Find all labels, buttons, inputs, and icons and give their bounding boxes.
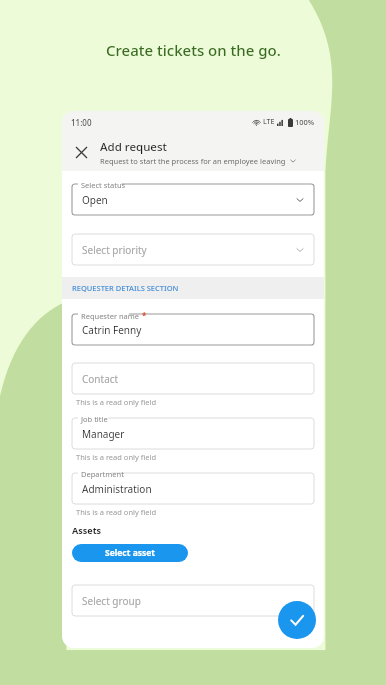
button[interactable]: Select asset (72, 544, 188, 562)
staticText: REQUESTER DETAILS SECTION (72, 283, 179, 293)
staticText: This is a read only field (76, 507, 157, 517)
staticText: Request to start the process for an empl… (100, 156, 286, 166)
staticText: This is a read only field (76, 397, 157, 407)
staticText: 100% (295, 117, 315, 127)
staticText: Catrin Fenny (82, 323, 142, 337)
staticText: LTE (263, 117, 275, 127)
button[interactable]: Submit request (278, 601, 316, 639)
staticText: Select asset (105, 547, 156, 559)
staticText: Open (82, 193, 108, 207)
staticText: Select priority (82, 243, 147, 257)
button[interactable]: Catrin Fenny (72, 314, 314, 345)
staticText: Select group (82, 594, 141, 608)
staticText: Job title (81, 414, 108, 424)
staticText: Create tickets on the go. (106, 40, 281, 60)
staticText: 11:00 (71, 117, 92, 128)
staticText: Department (81, 469, 124, 479)
button[interactable]: Administration (72, 473, 314, 504)
staticText: Administration (82, 482, 152, 496)
staticText: Manager (82, 427, 125, 441)
button[interactable]: Manager (72, 418, 314, 449)
staticText: * (142, 310, 147, 321)
staticText: Requester name (81, 311, 140, 321)
staticText: Contact (82, 372, 119, 386)
button[interactable]: Open (72, 184, 314, 215)
button[interactable]: Select priority (72, 234, 314, 265)
button[interactable]: Contact (72, 363, 314, 394)
staticText: Add request (100, 139, 167, 155)
button[interactable]: Close (62, 133, 100, 171)
staticText: Assets (72, 524, 102, 536)
staticText: Select status (81, 180, 126, 190)
button[interactable]: Select group (72, 585, 314, 616)
staticText: This is a read only field (76, 452, 157, 462)
